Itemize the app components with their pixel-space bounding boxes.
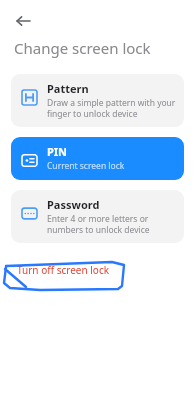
staticText: Password xyxy=(47,197,100,212)
staticText: Draw a simple pattern with your finger t… xyxy=(47,97,176,119)
staticText: Enter 4 or more letters or numbers to un… xyxy=(47,213,176,235)
staticText: Current screen lock xyxy=(47,160,125,172)
button[interactable]: Password xyxy=(11,190,184,243)
staticText: Change screen lock xyxy=(14,38,151,58)
button[interactable]: PIN xyxy=(11,137,184,180)
staticText: Pattern xyxy=(47,81,89,96)
staticText: PIN xyxy=(47,144,68,159)
button[interactable]: Back xyxy=(10,8,36,34)
button[interactable]: Turn off screen lock xyxy=(17,263,110,277)
staticText: Turn off screen lock xyxy=(17,263,110,277)
button[interactable]: Pattern xyxy=(11,74,184,127)
